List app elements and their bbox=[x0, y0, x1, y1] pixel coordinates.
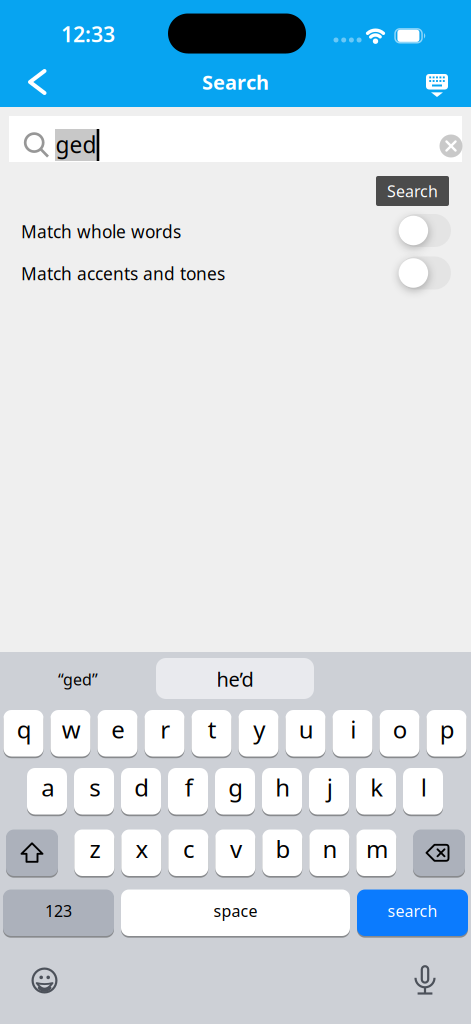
staticText: space bbox=[213, 900, 257, 921]
staticText: j bbox=[327, 771, 333, 803]
staticText: h bbox=[275, 771, 290, 803]
staticText: v bbox=[230, 833, 242, 865]
staticText: b bbox=[276, 833, 291, 865]
staticText: q bbox=[17, 713, 32, 745]
staticText: l bbox=[421, 771, 427, 803]
staticText: n bbox=[323, 833, 338, 865]
staticText: c bbox=[183, 833, 195, 865]
staticText: o bbox=[393, 713, 408, 745]
staticText: f bbox=[185, 771, 193, 803]
staticText: ged bbox=[55, 129, 96, 159]
staticText: e bbox=[111, 713, 125, 745]
staticText: y bbox=[253, 713, 265, 745]
staticText: u bbox=[299, 713, 314, 745]
staticText: w bbox=[62, 713, 81, 745]
staticText: a bbox=[41, 771, 54, 803]
staticText: Search bbox=[387, 180, 438, 202]
staticText: search bbox=[387, 900, 437, 921]
staticText: 123 bbox=[45, 900, 72, 921]
staticText: Search bbox=[202, 69, 269, 95]
staticText: z bbox=[90, 833, 101, 865]
staticText: k bbox=[370, 771, 383, 803]
staticText: he’d bbox=[216, 666, 253, 692]
staticText: “ged” bbox=[58, 669, 98, 690]
staticText: t bbox=[208, 713, 217, 745]
staticText: Match accents and tones bbox=[21, 262, 225, 285]
staticText: i bbox=[350, 713, 356, 745]
staticText: d bbox=[134, 771, 149, 803]
staticText: r bbox=[160, 713, 170, 745]
staticText: p bbox=[440, 713, 455, 745]
staticText: m bbox=[366, 833, 388, 865]
staticText: s bbox=[89, 771, 100, 803]
staticText: x bbox=[136, 833, 149, 865]
staticText: Match whole words bbox=[21, 220, 181, 243]
staticText: 12:33 bbox=[61, 20, 115, 48]
staticText: g bbox=[228, 771, 243, 803]
